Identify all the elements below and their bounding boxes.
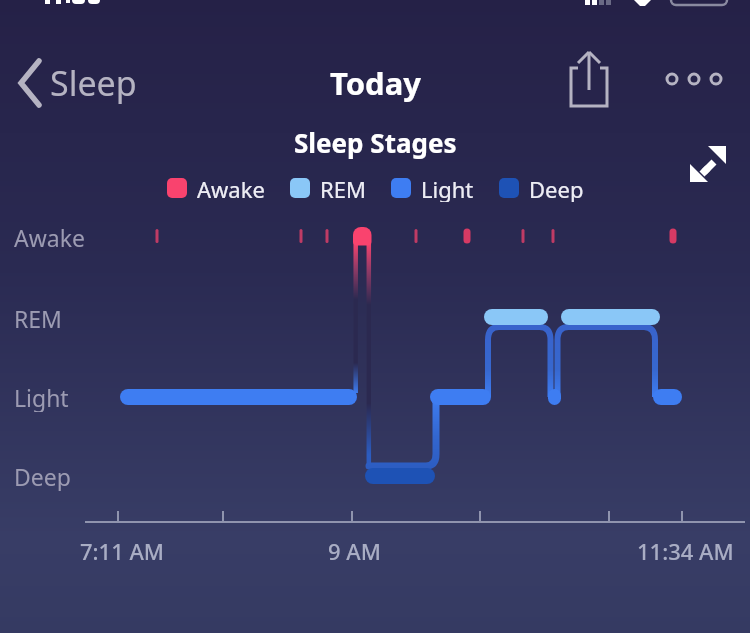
staticText: REM — [14, 303, 62, 333]
staticText: Deep — [529, 174, 584, 202]
staticText: Sleep — [50, 60, 137, 106]
staticText: 9 AM — [328, 536, 381, 566]
button[interactable] — [684, 140, 736, 192]
button[interactable] — [560, 45, 618, 115]
staticText: Sleep Stages — [294, 125, 457, 160]
staticText: Deep — [14, 461, 71, 491]
staticText: 11:34 AM — [637, 536, 734, 566]
button[interactable]: Awake — [167, 174, 265, 202]
button[interactable]: Deep — [499, 174, 584, 202]
button[interactable] — [658, 62, 730, 96]
staticText: Awake — [14, 222, 85, 252]
staticText: 7:11 AM — [80, 536, 165, 566]
staticText: Today — [330, 62, 421, 102]
button[interactable]: Light — [391, 174, 474, 202]
staticText: Awake — [197, 174, 265, 202]
staticText: Light — [421, 174, 474, 202]
staticText: Light — [14, 382, 69, 412]
button[interactable]: REM — [290, 174, 366, 202]
button[interactable]: Sleep — [12, 55, 137, 110]
staticText: REM — [320, 174, 366, 202]
